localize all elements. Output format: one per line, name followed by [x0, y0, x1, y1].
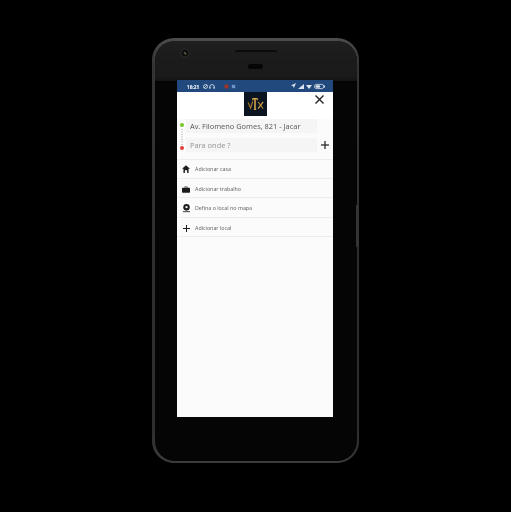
button[interactable]: Adicionar local	[177, 218, 333, 237]
staticText: Adicionar trabalho	[195, 185, 241, 192]
button[interactable]: Add stop	[318, 138, 332, 152]
button[interactable]: Close	[310, 90, 328, 108]
staticText: Para onde ?	[190, 140, 231, 150]
staticText: 16:21	[187, 84, 200, 91]
button[interactable]: VTX logo	[244, 92, 267, 116]
staticText: Av. Filomeno Gomes, 821 - Jacar	[190, 121, 301, 131]
staticText: Adicionar local	[195, 224, 232, 231]
button[interactable]: Defina o local no mapa	[177, 198, 333, 217]
staticText: Adicionar casa	[195, 165, 231, 172]
button[interactable]: Adicionar casa	[177, 159, 333, 178]
button[interactable]: Adicionar trabalho	[177, 179, 333, 198]
button[interactable]: Para onde ?	[186, 138, 317, 152]
staticText: Defina o local no mapa	[195, 204, 253, 211]
button[interactable]: Av. Filomeno Gomes, 821 - Jacar	[186, 119, 317, 133]
